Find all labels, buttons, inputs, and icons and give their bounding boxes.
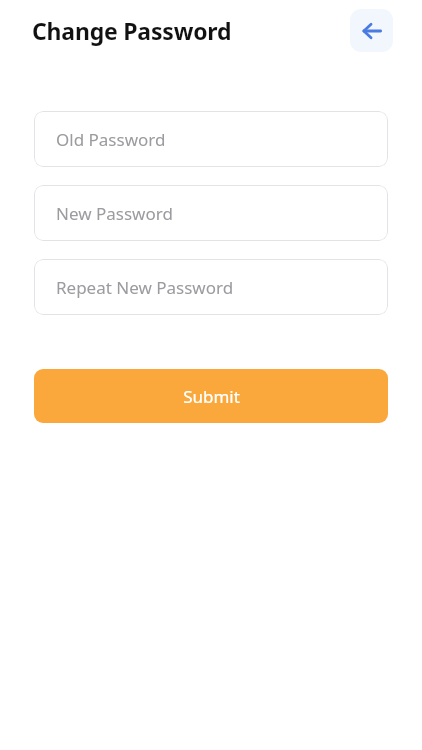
button[interactable]: Repeat New Password <box>34 259 388 315</box>
staticText: Change Password <box>32 15 232 46</box>
staticText: Repeat New Password <box>56 276 234 299</box>
button[interactable]: New Password <box>34 185 388 241</box>
button[interactable]: Old Password <box>34 111 388 167</box>
button[interactable]: Submit <box>34 369 388 423</box>
button[interactable]: Back <box>350 9 393 52</box>
staticText: Submit <box>183 385 240 408</box>
staticText: New Password <box>56 202 173 225</box>
staticText: Old Password <box>56 128 166 151</box>
